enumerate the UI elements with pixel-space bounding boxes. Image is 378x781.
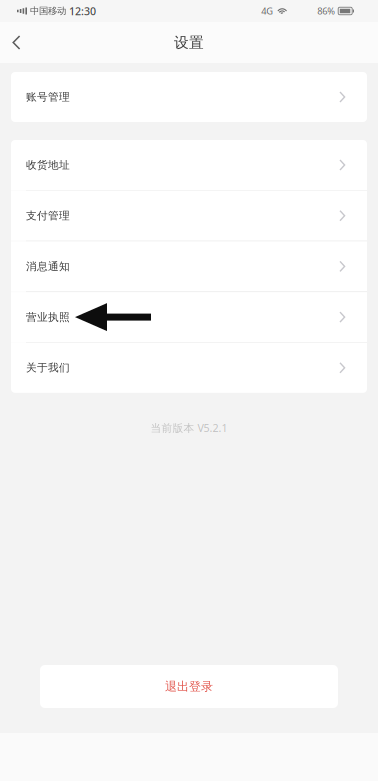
- staticText: 支付管理: [26, 209, 70, 222]
- staticText: 账号管理: [26, 90, 70, 103]
- staticText: 关于我们: [26, 361, 70, 374]
- button[interactable]: 返回: [0, 22, 33, 63]
- staticText: 收货地址: [26, 158, 70, 171]
- button[interactable]: 收货地址: [11, 140, 367, 190]
- staticText: 当前版本 V5.2.1: [150, 421, 227, 435]
- button[interactable]: 营业执照: [11, 292, 367, 342]
- button[interactable]: 账号管理: [11, 72, 367, 122]
- staticText: 4G: [261, 5, 273, 17]
- button[interactable]: 消息通知: [11, 241, 367, 291]
- button[interactable]: 退出登录: [40, 665, 338, 708]
- button[interactable]: 支付管理: [11, 191, 367, 241]
- staticText: 营业执照: [26, 310, 70, 324]
- button[interactable]: 关于我们: [11, 343, 367, 393]
- staticText: 退出登录: [165, 679, 213, 694]
- staticText: 12:30: [69, 4, 96, 18]
- staticText: 设置: [174, 33, 204, 51]
- staticText: 86%: [317, 5, 335, 17]
- staticText: 消息通知: [26, 260, 70, 273]
- staticText: 中国移动: [27, 5, 69, 17]
